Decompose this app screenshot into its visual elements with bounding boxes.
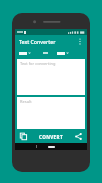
button[interactable]: CONVERT bbox=[29, 130, 73, 143]
button[interactable]: Text for converting bbox=[17, 59, 85, 95]
button[interactable]: Copy bbox=[18, 131, 29, 142]
button[interactable]: Home bbox=[48, 146, 55, 148]
button[interactable]: More options bbox=[75, 36, 85, 46]
button[interactable]: Result bbox=[17, 97, 85, 129]
staticText: Text Converter bbox=[19, 38, 56, 45]
staticText: CONVERT bbox=[39, 134, 63, 140]
button[interactable]: Choose format bbox=[19, 49, 31, 57]
staticText: Text for converting bbox=[20, 61, 56, 66]
staticText: Result bbox=[20, 99, 32, 104]
button[interactable]: Share bbox=[73, 131, 84, 142]
button[interactable]: Choose format bbox=[57, 49, 69, 57]
